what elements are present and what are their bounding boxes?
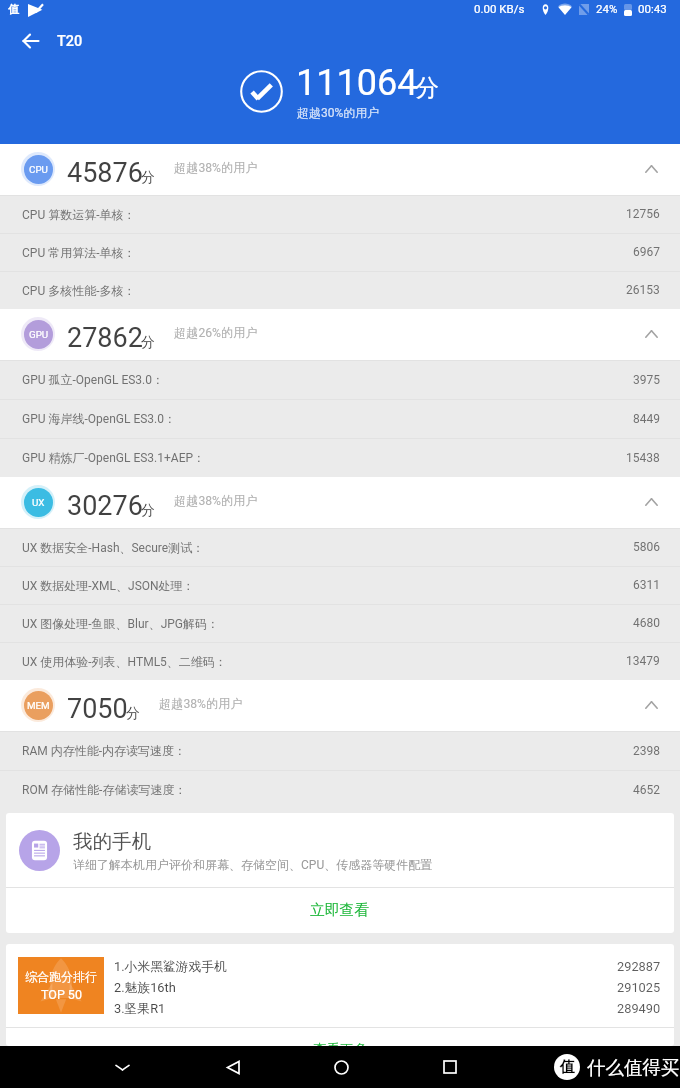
staticText: 超越38%的用户: [174, 160, 258, 175]
staticText: GPU 孤立-OpenGL ES3.0：: [22, 372, 165, 387]
staticText: MEM: [27, 700, 50, 711]
staticText: 分: [141, 502, 155, 520]
button[interactable]: UX: [0, 477, 680, 528]
button[interactable]: 综合跑分排行: [6, 944, 674, 1027]
staticText: 4652: [633, 783, 660, 797]
staticText: 详细了解本机用户评价和屏幕、存储空间、CPU、传感器等硬件配置: [73, 857, 433, 872]
staticText: CPU 多核性能-多核：: [22, 283, 136, 298]
staticText: UX 数据安全-Hash、Secure测试：: [22, 540, 205, 555]
staticText: 3975: [633, 373, 660, 387]
button[interactable]: GPU: [0, 309, 680, 360]
staticText: 8449: [633, 412, 660, 426]
staticText: 2398: [633, 744, 660, 758]
button[interactable]: Hide keyboard: [108, 1053, 136, 1081]
staticText: 分: [126, 705, 140, 723]
staticText: 超越38%的用户: [159, 696, 243, 711]
staticText: 值: [8, 2, 19, 16]
staticText: 7050: [67, 693, 128, 725]
button[interactable]: UX 图像处理-鱼眼、Blur、JPG解码：: [0, 604, 680, 642]
staticText: 分: [141, 334, 155, 352]
staticText: 超越38%的用户: [174, 493, 258, 508]
staticText: 26153: [626, 283, 660, 297]
staticText: RAM 内存性能-内存读写速度：: [22, 743, 186, 758]
button[interactable]: UX 数据安全-Hash、Secure测试：: [0, 528, 680, 566]
button[interactable]: GPU 孤立-OpenGL ES3.0：: [0, 360, 680, 399]
staticText: 6311: [633, 578, 660, 592]
staticText: GPU: [29, 329, 49, 340]
staticText: 查看更多: [6, 1041, 674, 1046]
button[interactable]: CPU 算数运算-单核：: [0, 195, 680, 233]
staticText: 111064: [296, 62, 418, 104]
staticText: 45876: [67, 157, 143, 189]
staticText: UX 图像处理-鱼眼、Blur、JPG解码：: [22, 616, 220, 631]
staticText: UX 使用体验-列表、HTML5、二维码：: [22, 654, 227, 669]
staticText: 00:43: [638, 2, 667, 15]
button[interactable]: GPU 海岸线-OpenGL ES3.0：: [0, 399, 680, 438]
button[interactable]: 立即查看: [6, 888, 674, 933]
staticText: 24%: [596, 2, 618, 15]
staticText: T20: [57, 33, 83, 50]
staticText: TOP 50: [41, 987, 82, 1002]
staticText: CPU 算数运算-单核：: [22, 207, 136, 222]
button[interactable]: UX 数据处理-XML、JSON处理：: [0, 566, 680, 604]
staticText: 5806: [633, 540, 660, 554]
staticText: 291025: [617, 980, 661, 995]
button[interactable]: CPU 常用算法-单核：: [0, 233, 680, 271]
staticText: UX: [32, 497, 45, 508]
staticText: 超越26%的用户: [174, 325, 258, 340]
staticText: GPU 海岸线-OpenGL ES3.0：: [22, 411, 177, 426]
button[interactable]: Recents: [436, 1053, 464, 1081]
staticText: 我的手机: [73, 829, 151, 854]
button[interactable]: Home: [327, 1053, 355, 1081]
staticText: UX 数据处理-XML、JSON处理：: [22, 578, 195, 593]
staticText: 3.坚果R1: [114, 1001, 166, 1017]
staticText: 立即查看: [310, 901, 370, 920]
button[interactable]: Back: [17, 27, 45, 55]
button[interactable]: ROM 存储性能-存储读写速度：: [0, 770, 680, 809]
staticText: CPU: [29, 164, 48, 175]
staticText: 分: [141, 169, 155, 187]
staticText: 什么值得买: [587, 1056, 680, 1079]
button[interactable]: UX 使用体验-列表、HTML5、二维码：: [0, 642, 680, 680]
button[interactable]: Back: [219, 1053, 247, 1081]
button[interactable]: GPU 精炼厂-OpenGL ES3.1+AEP：: [0, 438, 680, 477]
staticText: 0.00 KB/s: [474, 2, 525, 15]
staticText: 15438: [626, 451, 660, 465]
button[interactable]: 我的手机: [6, 813, 674, 887]
staticText: 12756: [626, 207, 660, 221]
staticText: 综合跑分排行: [25, 969, 97, 984]
button[interactable]: RAM 内存性能-内存读写速度：: [0, 731, 680, 770]
staticText: 27862: [67, 322, 143, 354]
staticText: 值: [560, 1058, 575, 1077]
staticText: 4680: [633, 616, 660, 630]
staticText: CPU 常用算法-单核：: [22, 245, 136, 260]
staticText: 1.小米黑鲨游戏手机: [114, 959, 227, 975]
button[interactable]: CPU 多核性能-多核：: [0, 271, 680, 309]
staticText: 30276: [67, 490, 143, 522]
staticText: 2.魅族16th: [114, 980, 176, 996]
staticText: 分: [415, 73, 439, 103]
staticText: 289490: [617, 1001, 661, 1016]
staticText: GPU 精炼厂-OpenGL ES3.1+AEP：: [22, 450, 206, 465]
staticText: 13479: [626, 654, 660, 668]
button[interactable]: CPU: [0, 144, 680, 195]
staticText: ROM 存储性能-存储读写速度：: [22, 782, 187, 797]
staticText: 6967: [633, 245, 660, 259]
button[interactable]: 查看更多: [6, 1028, 674, 1046]
staticText: 超越30%的用户: [297, 105, 380, 120]
staticText: 292887: [617, 959, 661, 974]
button[interactable]: MEM: [0, 680, 680, 731]
